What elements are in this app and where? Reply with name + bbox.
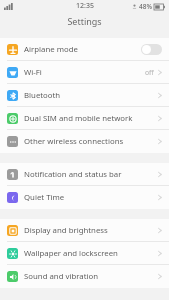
button[interactable]: Notification and status bar <box>0 163 169 186</box>
staticText: Other wireless connections <box>24 136 158 147</box>
staticText: 48% <box>139 2 152 11</box>
staticText: Wi-Fi <box>24 67 145 78</box>
button[interactable]: Dual SIM and mobile network <box>0 107 169 130</box>
staticText: Sound and vibration <box>24 271 158 282</box>
staticText: off <box>145 68 154 77</box>
button[interactable]: Other wireless connections <box>0 130 169 153</box>
staticText: Dual SIM and mobile network <box>24 113 158 124</box>
button[interactable]: Airplane mode toggle <box>141 44 162 55</box>
button[interactable]: Wi-Fi <box>0 61 169 84</box>
button[interactable]: Quiet Time <box>0 186 169 209</box>
staticText: Settings <box>67 15 102 27</box>
staticText: Bluetooth <box>24 90 158 101</box>
staticText: Quiet Time <box>24 192 158 203</box>
button[interactable]: Bluetooth <box>0 84 169 107</box>
staticText: Airplane mode <box>24 44 141 55</box>
staticText: 12:35 <box>76 1 94 11</box>
button[interactable]: Wallpaper and lockscreen magazines <box>0 242 169 265</box>
button[interactable]: Airplane mode <box>0 38 169 61</box>
staticText: Display and brightness <box>24 225 158 236</box>
staticText: Wallpaper and lockscreen magazines <box>24 248 158 259</box>
staticText: Notification and status bar <box>24 169 158 180</box>
button[interactable]: Sound and vibration <box>0 265 169 288</box>
button[interactable]: Display and brightness <box>0 219 169 242</box>
